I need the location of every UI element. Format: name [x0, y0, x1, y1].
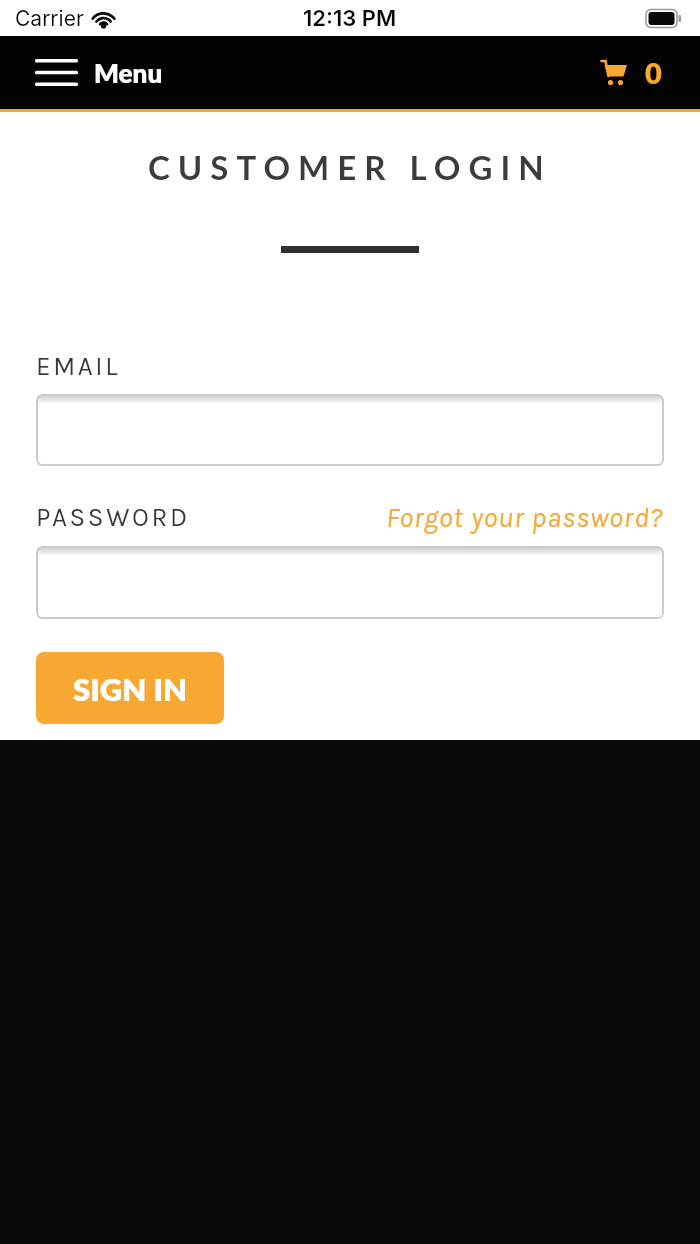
staticText: Forgot your password? — [386, 501, 664, 534]
button[interactable]: Forgot your password? — [386, 501, 664, 534]
button[interactable] — [36, 394, 664, 466]
staticText: Carrier — [15, 6, 84, 31]
button[interactable] — [36, 546, 664, 619]
staticText: CUSTOMER LOGIN — [148, 147, 552, 187]
button[interactable]: 0 — [601, 55, 662, 90]
staticText: Menu — [94, 57, 163, 88]
staticText: EMAIL — [36, 351, 121, 381]
staticText: 12:13 PM — [303, 5, 397, 32]
staticText: PASSWORD — [36, 502, 190, 532]
staticText: 0 — [645, 55, 662, 90]
staticText: SIGN IN — [73, 670, 188, 707]
button[interactable]: SIGN IN — [36, 652, 224, 724]
button[interactable]: Menu — [35, 57, 163, 88]
